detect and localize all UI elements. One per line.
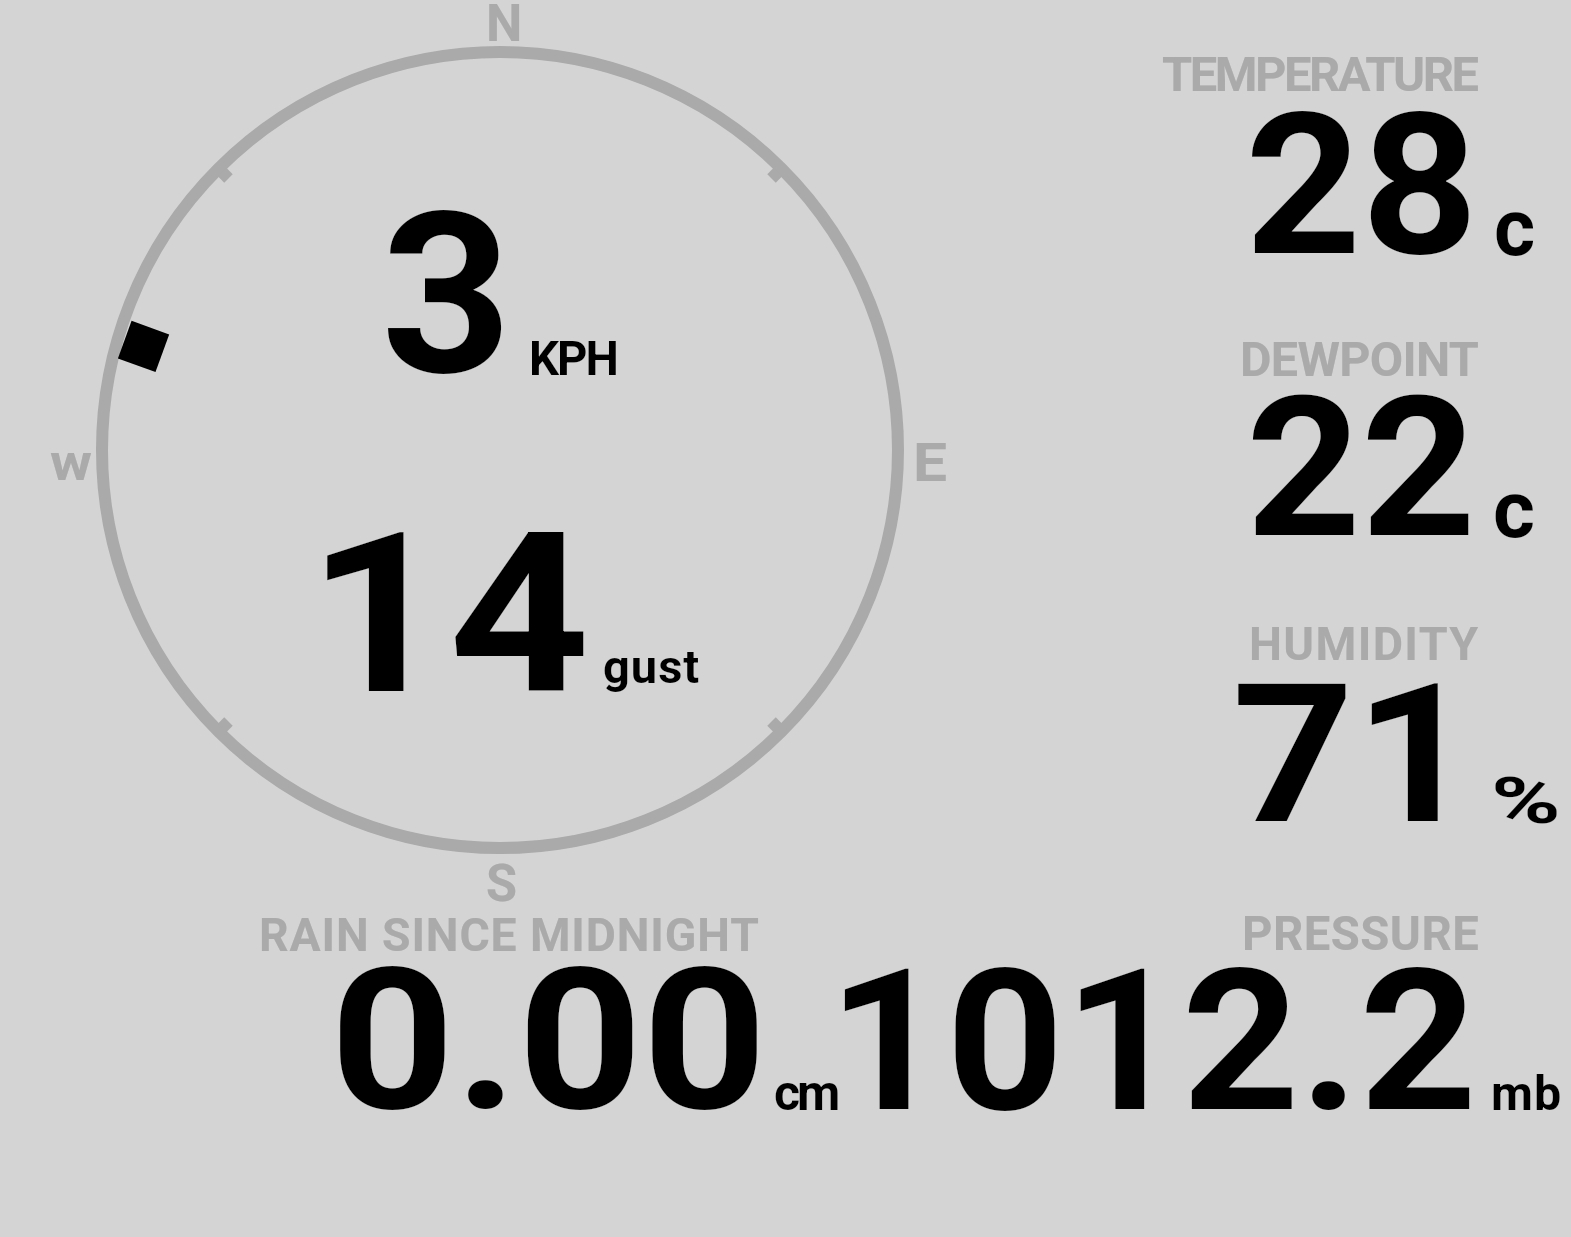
staticText: w [50, 432, 93, 493]
staticText: 14 [307, 485, 590, 745]
staticText: gust [603, 639, 701, 694]
staticText: cm [774, 1064, 838, 1123]
staticText: % [1491, 762, 1562, 839]
staticText: c [1493, 462, 1535, 556]
button[interactable]: Rain since midnight 0.00 cm [250, 895, 850, 1125]
staticText: 0.00 [330, 925, 768, 1156]
staticText: c [1494, 182, 1536, 275]
staticText: E [913, 430, 947, 494]
button[interactable]: Pressure 1012.2 millibars [860, 895, 1565, 1125]
staticText: N [486, 0, 523, 53]
staticText: DEWPOINT [1240, 331, 1479, 388]
button[interactable]: Humidity 71 percent [1140, 600, 1560, 840]
staticText: 28 [1245, 70, 1479, 301]
staticText: PRESSURE [1242, 906, 1480, 961]
staticText: S [486, 853, 518, 914]
button[interactable]: Dewpoint 22 degrees [1140, 315, 1560, 555]
staticText: 71 [1232, 642, 1477, 868]
staticText: HUMIDITY [1249, 617, 1480, 672]
button[interactable]: Wind speed and direction [60, 10, 940, 890]
staticText: KPH [529, 331, 617, 386]
staticText: 3 [381, 163, 513, 427]
button[interactable]: Temperature 28 degrees [1140, 30, 1560, 270]
staticText: TEMPERATURE [1162, 46, 1477, 103]
staticText: mb [1491, 1065, 1563, 1122]
staticText: 22 [1246, 354, 1476, 583]
staticText: RAIN SINCE MIDNIGHT [259, 908, 760, 962]
staticText: 1012.2 [828, 927, 1478, 1157]
